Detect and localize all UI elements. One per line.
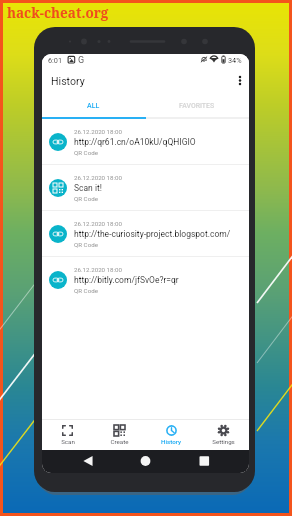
button[interactable]: FAVORITES (145, 95, 249, 117)
staticText: FAVORITES (179, 102, 215, 110)
staticText: 6:01 (48, 56, 63, 65)
button[interactable]: ALL (42, 95, 145, 117)
staticText: http://qr61.cn/oA10kU/qQHIGIO (74, 137, 196, 147)
staticText: ALL (87, 102, 100, 110)
staticText: QR Code (74, 287, 98, 294)
button[interactable]: 26.12.2020 18:00 (42, 257, 249, 303)
staticText: 26.12.2020 18:00 (74, 266, 123, 273)
staticText: 26.12.2020 18:00 (74, 220, 123, 227)
staticText: Scan it! (74, 183, 102, 193)
button[interactable]: 26.12.2020 18:00 (42, 119, 249, 165)
staticText: History (161, 438, 181, 445)
button[interactable]: Settings (197, 420, 249, 450)
staticText: QR Code (74, 149, 98, 156)
staticText: http://bitly.com/jfSvOe?r=qr (74, 275, 179, 285)
staticText: QR Code (74, 195, 98, 202)
staticText: 26.12.2020 18:00 (74, 174, 123, 181)
button[interactable]: 26.12.2020 18:00 (42, 165, 249, 211)
button[interactable]: History (145, 420, 197, 450)
staticText: QR Code (74, 241, 98, 248)
staticText: hack-cheat.org (7, 4, 109, 22)
button[interactable]: More options (227, 66, 249, 95)
button[interactable]: 26.12.2020 18:00 (42, 211, 249, 257)
staticText: 26.12.2020 18:00 (74, 128, 123, 135)
staticText: Settings (212, 438, 235, 445)
button[interactable]: Scan (42, 420, 93, 450)
staticText: G (78, 55, 85, 66)
staticText: Create (110, 438, 129, 445)
staticText: History (51, 75, 85, 87)
staticText: 34% (228, 56, 242, 65)
button[interactable]: Create (93, 420, 145, 450)
staticText: http://the-curiosity-project.blogspot.co… (74, 229, 231, 239)
staticText: Scan (61, 438, 75, 445)
